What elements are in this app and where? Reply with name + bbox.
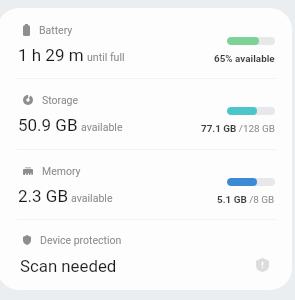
staticText: 2.3 GB: [18, 186, 68, 206]
staticText: 5.1 GB /8 GB: [217, 194, 275, 206]
button[interactable]: Storage: [0, 78, 295, 148]
staticText: available: [81, 121, 123, 133]
staticText: Memory: [42, 165, 81, 177]
button[interactable]: Battery: [0, 8, 295, 78]
staticText: 50.9 GB: [18, 115, 78, 135]
staticText: Storage: [42, 94, 79, 106]
staticText: Battery: [39, 24, 73, 36]
button[interactable]: Device protection: [0, 219, 295, 290]
staticText: 65% available: [214, 53, 275, 65]
staticText: 77.1 GB /128 GB: [201, 123, 275, 135]
staticText: Device protection: [40, 234, 122, 246]
staticText: until full: [87, 51, 125, 63]
other: Device protection: [256, 258, 269, 272]
staticText: 1 h 29 m: [18, 45, 84, 65]
staticText: available: [71, 192, 113, 204]
button[interactable]: Memory: [0, 149, 295, 219]
staticText: Scan needed: [20, 256, 117, 276]
